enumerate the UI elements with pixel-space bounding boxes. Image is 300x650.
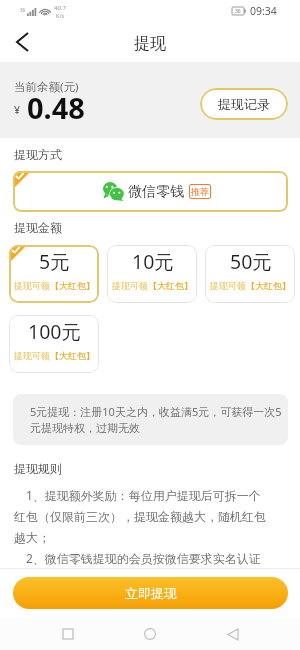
staticText: 36 — [20, 7, 26, 13]
staticText: 0.48 — [27, 88, 85, 127]
button[interactable]: 10元 — [107, 245, 197, 303]
button[interactable]: 提现记录 — [200, 88, 288, 120]
staticText: ¥ — [14, 103, 21, 117]
staticText: 立即提现 — [125, 585, 177, 601]
staticText: 1、提现额外奖励：每位用户提现后可拆一个红包（仅限前三次），提现金额越大，随机红… — [14, 487, 271, 567]
button[interactable]: 主页 — [135, 619, 165, 649]
staticText: 09:34 — [250, 4, 277, 18]
button[interactable]: 返回 — [218, 619, 248, 649]
staticText: 提现金额 — [14, 220, 62, 235]
button[interactable]: 立即提现 — [13, 577, 288, 609]
button[interactable]: 5元 — [9, 245, 99, 303]
staticText: 40.7 — [54, 4, 66, 12]
staticText: 推荐 — [191, 186, 209, 197]
staticText: 提现 — [134, 34, 166, 54]
staticText: 提现可领【大红包】 — [14, 280, 95, 291]
staticText: 5元提现：注册10天之内，收益满5元，可获得一次5元提现特权，过期无效 — [30, 404, 282, 435]
button[interactable]: 100元 — [9, 315, 99, 373]
staticText: 10元 — [132, 248, 174, 275]
staticText: 提现可领【大红包】 — [112, 280, 193, 291]
staticText: K/s — [56, 12, 65, 19]
staticText: 提现规则 — [14, 461, 62, 476]
staticText: 50元 — [230, 248, 272, 275]
staticText: 提现可领【大红包】 — [14, 350, 95, 361]
button[interactable]: 最近任务 — [53, 619, 83, 649]
staticText: 提现记录 — [218, 96, 270, 112]
staticText: 微信零钱 — [128, 183, 184, 201]
staticText: 5元 — [39, 248, 70, 275]
staticText: 100元 — [28, 318, 81, 345]
button[interactable]: 50元 — [205, 245, 295, 303]
staticText: 提现可领【大红包】 — [210, 280, 291, 291]
staticText: 36 — [235, 8, 241, 15]
button[interactable]: 微信零钱 — [13, 171, 288, 212]
staticText: 当前余额(元) — [14, 79, 79, 95]
button[interactable]: 返回 — [0, 24, 40, 62]
staticText: 提现方式 — [14, 147, 62, 162]
